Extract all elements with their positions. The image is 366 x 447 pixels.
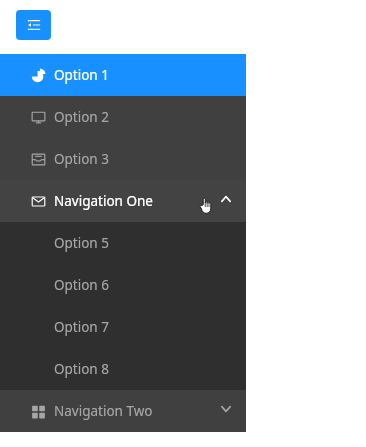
staticText: Option 6	[54, 276, 109, 294]
button[interactable]: Option 8	[0, 348, 246, 390]
button[interactable]: Option 5	[0, 222, 246, 264]
staticText: Navigation Two	[54, 402, 153, 420]
button[interactable]: Toggle menu	[16, 10, 51, 40]
button[interactable]: Option 1	[0, 54, 246, 96]
staticText: Option 3	[54, 150, 109, 168]
button[interactable]: Option 6	[0, 264, 246, 306]
staticText: Option 7	[54, 318, 109, 336]
button[interactable]: Option 2	[0, 96, 246, 138]
staticText: Option 1	[54, 66, 109, 84]
button[interactable]: Option 3	[0, 138, 246, 180]
staticText: Navigation One	[54, 192, 153, 210]
button[interactable]: Navigation Two	[0, 390, 246, 432]
button[interactable]: Option 7	[0, 306, 246, 348]
other: Collapse	[219, 192, 233, 206]
staticText: Option 8	[54, 360, 109, 378]
button[interactable]: Navigation One	[0, 180, 246, 222]
staticText: Option 2	[54, 108, 109, 126]
staticText: Option 5	[54, 234, 109, 252]
other: Expand	[219, 402, 233, 416]
